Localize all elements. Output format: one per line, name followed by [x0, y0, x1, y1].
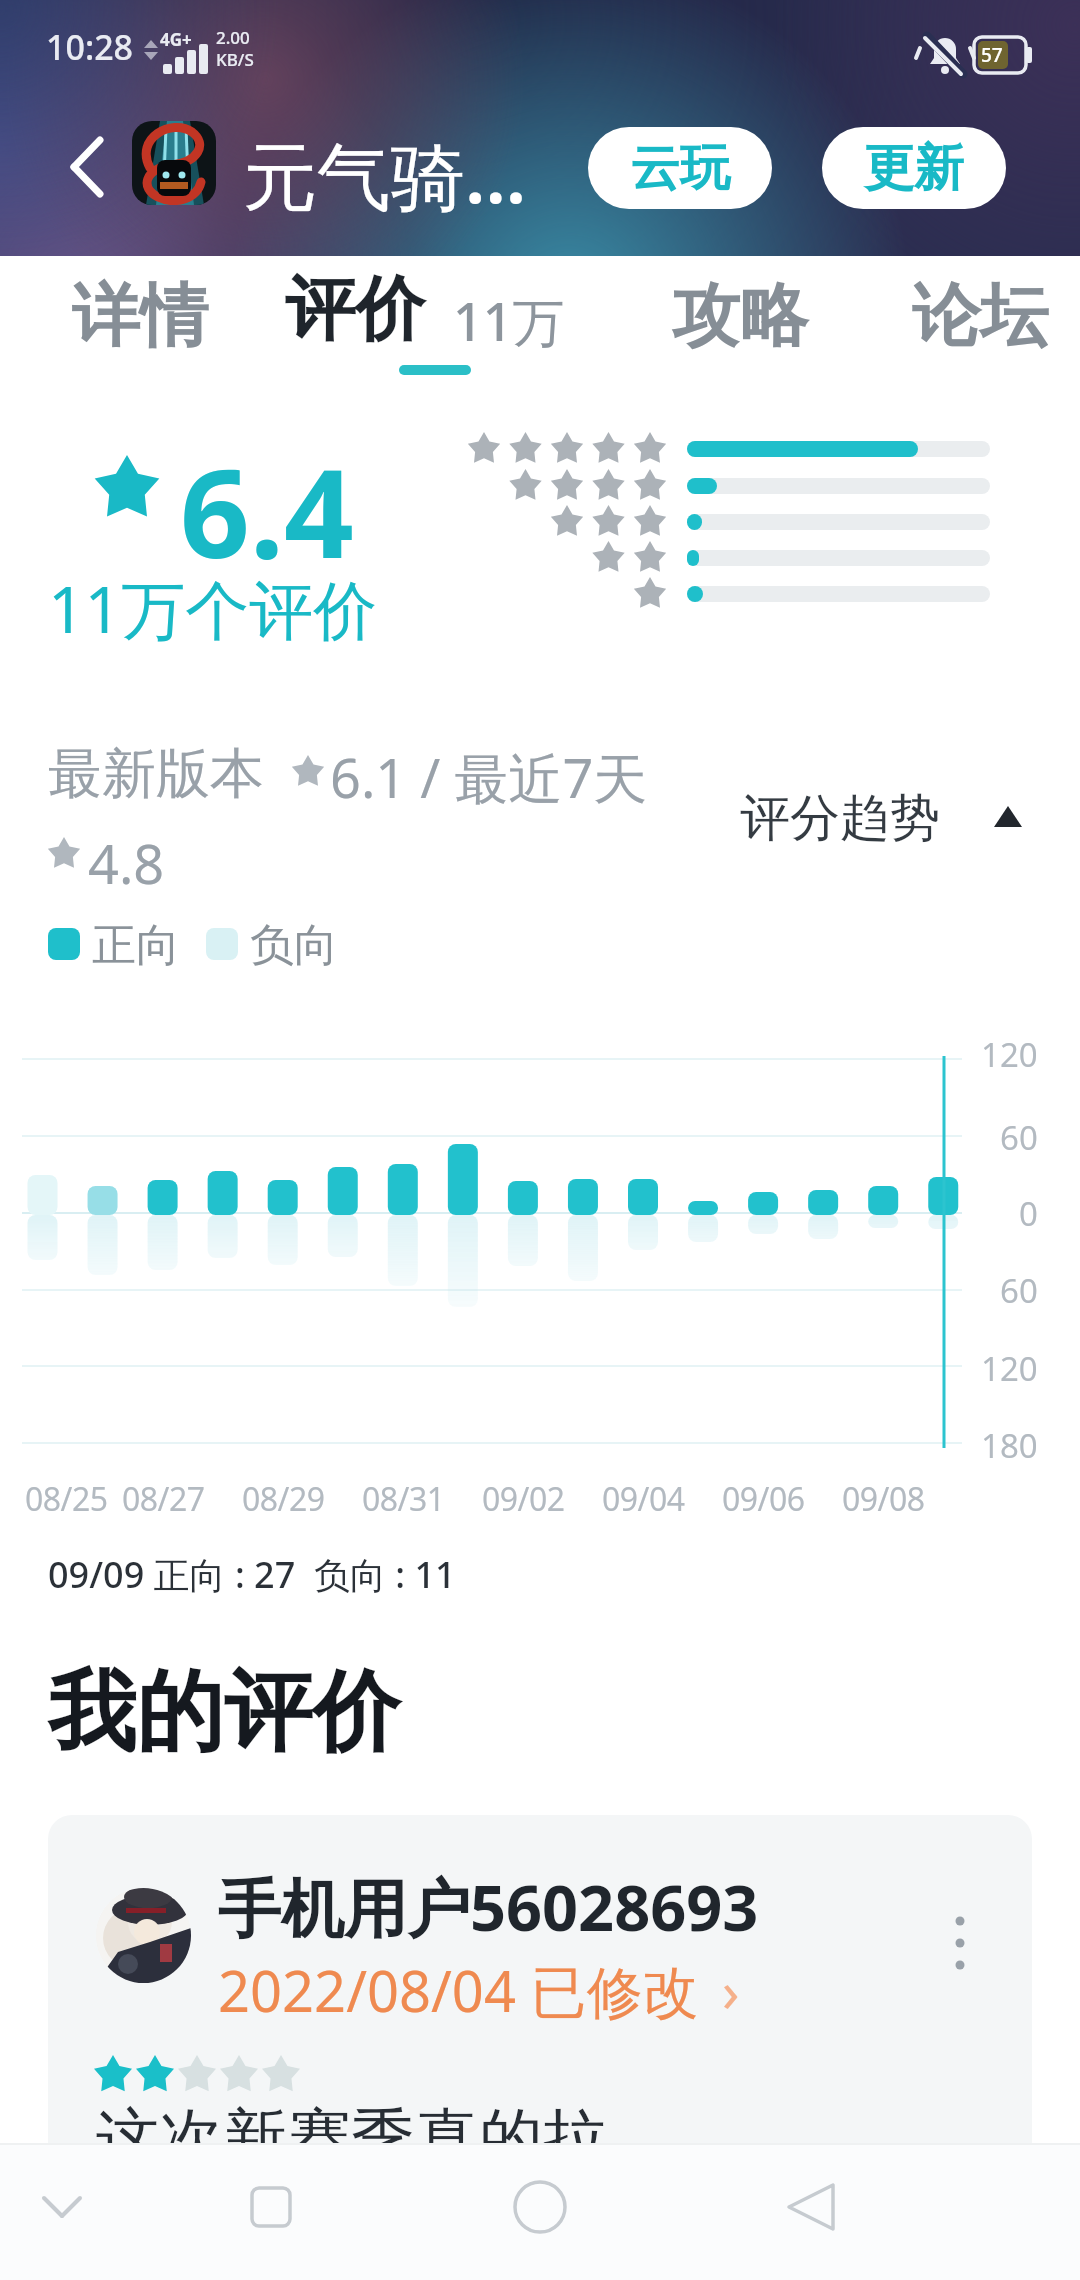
staticText: 09/09 正向 : 27 负向 : 11 [48, 1550, 456, 1599]
button[interactable] [48, 1815, 1032, 2280]
button[interactable]: 详情 [40, 262, 240, 372]
staticText: 我的评价 [48, 1657, 400, 1768]
button[interactable]: 更新 [822, 127, 1006, 209]
staticText: 08/27 [122, 1477, 205, 1521]
staticText: 2.00 [216, 26, 250, 49]
staticText: 08/25 [25, 1477, 108, 1521]
staticText: 最新版本 [48, 740, 264, 808]
button[interactable] [50, 130, 120, 205]
staticText: 11万个评价 [48, 565, 378, 652]
staticText: 08/31 [362, 1477, 445, 1521]
staticText: 60 [1000, 1268, 1038, 1313]
staticText: 手机用户56028693 [218, 1864, 759, 1950]
staticText: 4G+ [160, 28, 192, 51]
staticText: 09/04 [602, 1477, 685, 1521]
staticText: KB/S [216, 48, 254, 71]
staticText: 120 [981, 1346, 1038, 1391]
staticText: 更新 [864, 137, 964, 200]
staticText: 11万 [453, 285, 565, 356]
staticText: 评价 [285, 266, 425, 354]
staticText: 0 [1019, 1191, 1038, 1236]
staticText: 10:28 [46, 24, 134, 70]
staticText: 元气骑... [243, 124, 527, 225]
staticText: 60 [1000, 1115, 1038, 1160]
staticText: 6.4 [180, 428, 354, 594]
staticText: › [722, 1952, 740, 2028]
button[interactable]: 评价 [270, 266, 600, 376]
staticText: 09/06 [722, 1477, 805, 1521]
staticText: 4.8 [88, 826, 165, 900]
staticText: 云玩 [630, 137, 730, 200]
button[interactable] [500, 2168, 580, 2248]
button[interactable] [769, 2168, 849, 2248]
staticText: 评分趋势 [740, 787, 940, 850]
staticText: 08/29 [242, 1477, 325, 1521]
button[interactable] [720, 780, 1040, 850]
staticText: 详情 [72, 274, 208, 360]
staticText: 09/08 [842, 1477, 925, 1521]
staticText: 120 [981, 1032, 1038, 1077]
button[interactable] [231, 2168, 311, 2248]
staticText: 180 [981, 1423, 1038, 1468]
staticText: 2022/08/04 已修改 [218, 1952, 699, 2028]
button[interactable]: 攻略 [640, 262, 840, 372]
button[interactable]: 云玩 [588, 127, 772, 209]
staticText: 57 [981, 42, 1003, 68]
staticText: 正向 [92, 918, 180, 973]
staticText: 攻略 [672, 274, 808, 360]
button[interactable] [22, 2178, 102, 2238]
staticText: 负向 [250, 918, 338, 973]
staticText: 6.1 / 最近7天 [330, 740, 648, 814]
staticText: 论坛 [912, 274, 1048, 360]
staticText: 09/02 [482, 1477, 565, 1521]
staticText: 这次新赛季真的拉 [95, 2098, 607, 2179]
button[interactable]: 论坛 [880, 262, 1080, 372]
